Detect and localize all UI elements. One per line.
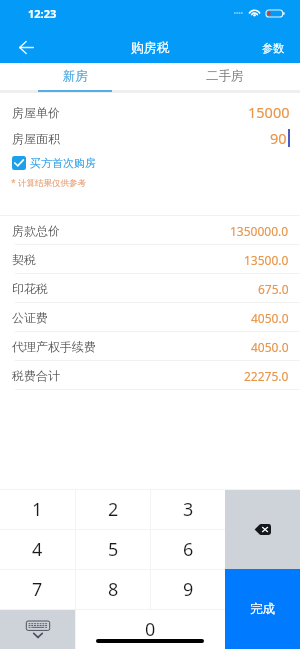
button[interactable]: Back: [0, 32, 44, 63]
staticText: 4050.0: [251, 310, 289, 326]
button[interactable]: 7: [0, 570, 75, 609]
button[interactable]: 2: [76, 489, 150, 529]
staticText: 房屋单价: [12, 105, 60, 120]
staticText: * 计算结果仅供参考: [11, 177, 86, 189]
button[interactable]: 9: [151, 570, 225, 609]
staticText: 90: [270, 128, 287, 148]
staticText: 2: [108, 497, 119, 522]
staticText: 房屋面积: [12, 131, 60, 146]
button[interactable]: 新房: [0, 63, 150, 93]
staticText: 房款总价: [12, 223, 60, 238]
button[interactable]: 1: [0, 489, 75, 529]
staticText: 税费合计: [12, 368, 60, 383]
button[interactable]: Hide keyboard: [0, 610, 75, 649]
staticText: 13500.0: [244, 252, 289, 268]
button[interactable]: 完成: [225, 569, 300, 649]
staticText: 22275.0: [244, 368, 289, 384]
staticText: 5: [108, 537, 119, 562]
button[interactable]: 4: [0, 530, 75, 569]
staticText: 买方首次购房: [30, 156, 96, 170]
staticText: 代理产权手续费: [12, 339, 96, 354]
button[interactable]: 3: [151, 489, 225, 529]
button[interactable]: 0: [76, 610, 225, 649]
staticText: 购房税: [131, 40, 170, 56]
staticText: 印花税: [12, 281, 48, 296]
staticText: 12:23: [28, 6, 57, 21]
staticText: 4: [32, 537, 43, 562]
staticText: 公证费: [12, 310, 48, 325]
staticText: 参数: [262, 41, 284, 55]
staticText: 15000: [248, 102, 290, 122]
staticText: 完成: [250, 601, 275, 617]
staticText: 4050.0: [251, 339, 289, 355]
button[interactable]: 二手房: [150, 63, 300, 93]
button[interactable]: Delete: [225, 489, 300, 569]
button[interactable]: 5: [76, 530, 150, 569]
button[interactable]: 参数: [248, 32, 300, 63]
staticText: 675.0: [258, 281, 289, 297]
button[interactable]: 买方首次购房: [12, 155, 96, 170]
staticText: 6: [183, 537, 194, 562]
button[interactable]: 8: [76, 570, 150, 609]
button[interactable]: 6: [151, 530, 225, 569]
staticText: 1: [32, 497, 43, 522]
staticText: 8: [108, 577, 119, 602]
staticText: 0: [145, 617, 156, 642]
staticText: 7: [32, 577, 43, 602]
staticText: 新房: [63, 68, 88, 84]
staticText: 1350000.0: [230, 223, 289, 239]
staticText: 二手房: [206, 68, 244, 84]
staticText: 3: [183, 497, 194, 522]
staticText: 9: [183, 577, 194, 602]
staticText: 契税: [12, 252, 36, 267]
